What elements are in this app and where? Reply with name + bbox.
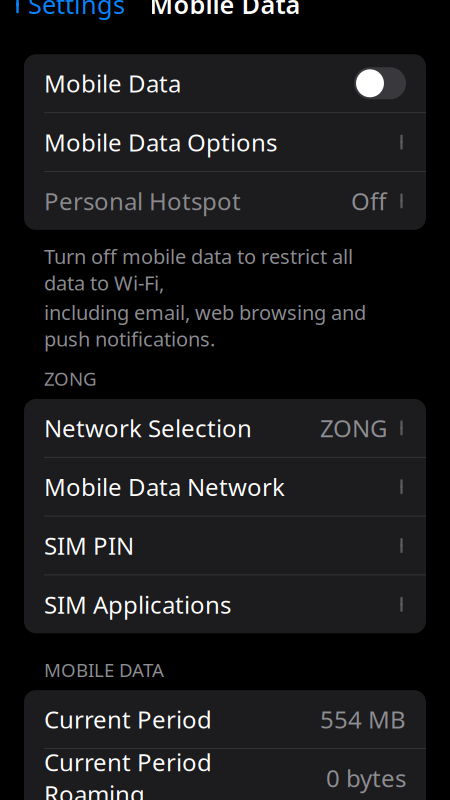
- staticText: Turn off mobile data to restrict all dat…: [44, 243, 353, 296]
- staticText: Current Period Roaming: [44, 746, 212, 800]
- button[interactable]: Mobile Data: [354, 67, 406, 99]
- button[interactable]: Network Selection: [24, 399, 426, 457]
- staticText: Mobile Data Options: [44, 126, 277, 158]
- staticText: 554 MB: [320, 703, 406, 735]
- staticText: Personal Hotspot: [44, 185, 241, 217]
- staticText: MOBILE DATA: [44, 657, 164, 682]
- staticText: including email, web browsing and push n…: [44, 299, 366, 352]
- staticText: Off: [351, 185, 387, 217]
- staticText: SIM Applications: [44, 588, 231, 620]
- staticText: Current Period: [44, 703, 212, 735]
- button[interactable]: Mobile Data Network: [24, 458, 426, 516]
- staticText: ZONG: [320, 412, 387, 444]
- staticText: SIM PIN: [44, 530, 134, 561]
- staticText: Mobile Data: [149, 0, 300, 21]
- staticText: Mobile Data Network: [44, 471, 285, 503]
- button[interactable]: Personal Hotspot: [24, 172, 426, 230]
- staticText: 0 bytes: [326, 762, 406, 794]
- staticText: Settings: [28, 0, 125, 21]
- staticText: ZONG: [44, 366, 97, 391]
- staticText: Mobile Data: [44, 67, 181, 99]
- button[interactable]: Settings: [0, 0, 137, 26]
- button[interactable]: SIM Applications: [24, 575, 426, 633]
- button[interactable]: Mobile Data Options: [24, 113, 426, 171]
- button[interactable]: SIM PIN: [24, 516, 426, 574]
- staticText: Network Selection: [44, 412, 252, 444]
